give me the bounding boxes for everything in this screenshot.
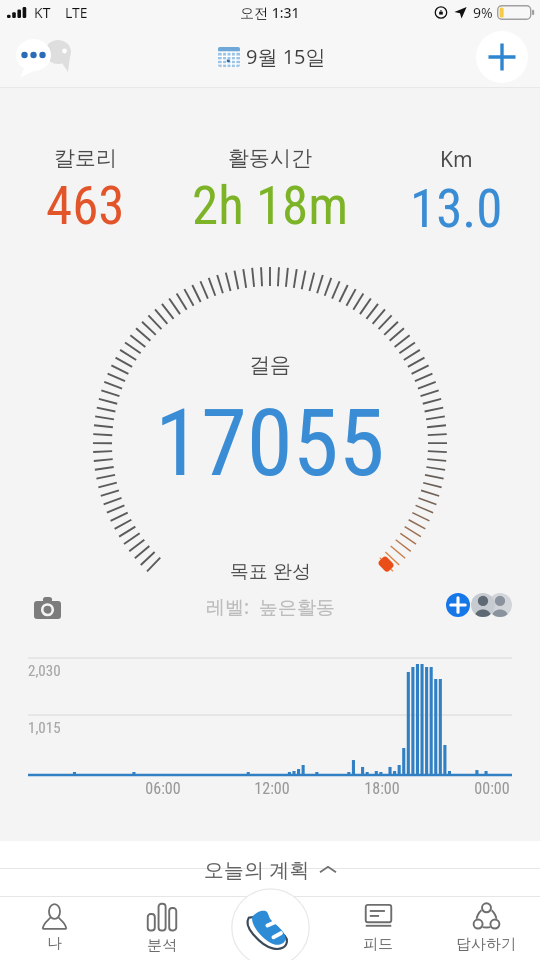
staticText: 9월 15일 [246, 43, 326, 70]
staticText: 나 [47, 934, 62, 953]
staticText: 1,015 [28, 719, 61, 737]
button[interactable]: Start workout [231, 888, 310, 960]
staticText: 오늘의 계획 [204, 856, 310, 883]
button[interactable]: 나 [10, 896, 98, 960]
staticText: 12:00 [232, 779, 312, 798]
staticText: 06:00 [123, 779, 203, 798]
button[interactable]: Add friend [446, 593, 470, 617]
staticText: Km [440, 145, 473, 174]
staticText: 답사하기 [456, 935, 516, 954]
button[interactable]: 오늘의 계획 [0, 841, 540, 896]
button[interactable]: 활동시간 [180, 145, 360, 237]
staticText: LTE [65, 3, 88, 22]
staticText: KT [34, 3, 51, 22]
button[interactable]: 피드 [334, 896, 422, 960]
staticText: 레벨: 높은활동 [206, 594, 335, 620]
staticText: 걸음 [249, 352, 291, 378]
button[interactable]: Camera [34, 597, 61, 619]
button[interactable]: Messages [12, 34, 74, 80]
staticText: 분석 [147, 936, 177, 955]
staticText: 17055 [155, 389, 385, 498]
staticText: 오전 1:31 [240, 3, 300, 22]
staticText: 피드 [363, 935, 393, 954]
staticText: 칼로리 [54, 145, 117, 171]
button[interactable]: 9월 15일 [218, 43, 326, 70]
button[interactable]: 답사하기 [442, 896, 530, 960]
staticText: 2h 18m [192, 175, 349, 237]
staticText: 463 [46, 175, 125, 237]
staticText: 9% [473, 3, 493, 22]
button[interactable]: 칼로리 [0, 145, 175, 237]
staticText: 13.0 [410, 178, 503, 240]
button[interactable]: Friend [471, 593, 495, 617]
staticText: 00:00 [452, 779, 532, 798]
staticText: 18:00 [342, 779, 422, 798]
staticText: 목표 완성 [230, 558, 311, 584]
button[interactable]: Km [366, 145, 540, 240]
staticText: 2,030 [28, 662, 61, 680]
button[interactable]: 분석 [118, 896, 206, 960]
button[interactable]: Add [476, 31, 528, 83]
staticText: 활동시간 [228, 145, 312, 171]
button[interactable]: Friend [488, 593, 512, 617]
